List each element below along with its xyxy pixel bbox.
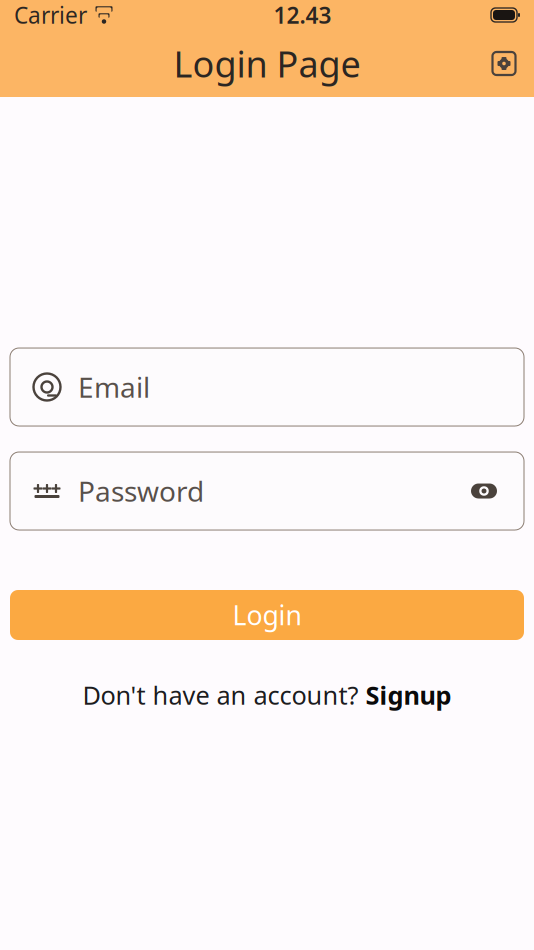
staticText: Email	[78, 368, 150, 406]
button[interactable]: Settings	[482, 41, 526, 85]
staticText: Don't have an account?	[82, 678, 365, 712]
staticText: Login Page	[173, 40, 360, 87]
staticText: Login	[232, 597, 301, 633]
staticText: Password	[78, 472, 204, 510]
staticText: Signup	[365, 678, 451, 712]
button[interactable]: Show password	[464, 471, 504, 511]
staticText: Carrier	[14, 0, 87, 30]
button[interactable]: Don't have an account?	[72, 672, 461, 718]
button[interactable]: Login	[10, 590, 524, 640]
staticText: 12.43	[273, 0, 331, 30]
